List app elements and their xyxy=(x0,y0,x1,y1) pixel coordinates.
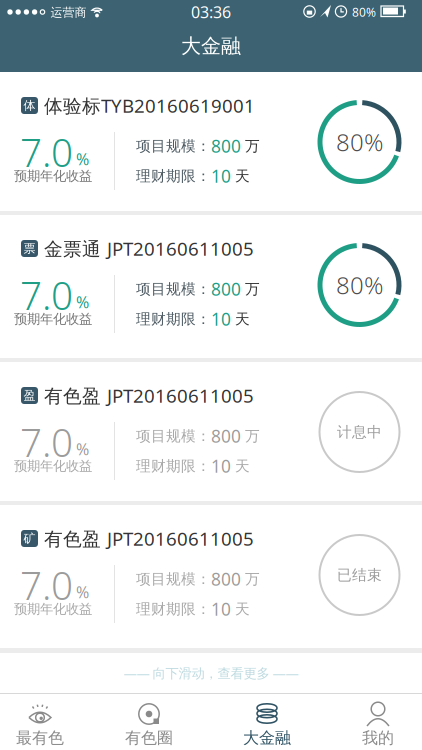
staticText: 大金融 xyxy=(181,34,241,58)
button[interactable]: 矿 xyxy=(0,505,422,648)
button[interactable]: 最有色 xyxy=(0,698,81,748)
staticText: 理财期限： xyxy=(136,600,211,618)
staticText: 预期年化收益 xyxy=(14,601,92,617)
staticText: 有色盈 JPT20160611005 xyxy=(44,526,254,551)
staticText: % xyxy=(76,291,89,313)
staticText: 计息中 xyxy=(337,423,382,441)
staticText: 7.0 xyxy=(20,416,73,468)
staticText: 项目规模： xyxy=(136,137,211,155)
staticText: 80% xyxy=(352,4,376,20)
staticText: 10 xyxy=(211,454,231,477)
staticText: 已结束 xyxy=(337,566,382,584)
button[interactable]: 有色圈 xyxy=(104,698,194,748)
button[interactable]: 体 xyxy=(0,72,422,211)
button[interactable]: 盈 xyxy=(0,362,422,501)
staticText: 800 xyxy=(211,424,241,447)
staticText: 预期年化收益 xyxy=(14,458,92,474)
staticText: —— 向下滑动，查看更多 —— xyxy=(123,664,298,682)
staticText: 03:36 xyxy=(191,1,231,23)
staticText: % xyxy=(76,148,89,170)
staticText: 天 xyxy=(231,600,250,618)
staticText: 万 xyxy=(241,570,260,588)
staticText: 万 xyxy=(241,427,260,445)
staticText: 大金融 xyxy=(243,728,291,748)
staticText: 项目规模： xyxy=(136,570,211,588)
staticText: 7.0 xyxy=(20,559,73,611)
staticText: 矿 xyxy=(23,531,35,546)
staticText: 理财期限： xyxy=(136,457,211,475)
staticText: 7.0 xyxy=(20,269,73,321)
staticText: 体验标TYB20160619001 xyxy=(44,93,255,118)
staticText: 天 xyxy=(231,310,250,328)
staticText: 天 xyxy=(231,167,250,185)
staticText: 80% xyxy=(336,126,383,158)
staticText: 最有色 xyxy=(16,728,64,748)
staticText: 10 xyxy=(211,164,231,187)
staticText: 项目规模： xyxy=(136,427,211,445)
staticText: 我的 xyxy=(362,728,394,748)
button[interactable]: 票 xyxy=(0,215,422,358)
staticText: 800 xyxy=(211,277,241,300)
staticText: 票 xyxy=(23,241,35,256)
staticText: 有色圈 xyxy=(125,728,173,748)
staticText: 金票通 JPT20160611005 xyxy=(44,236,254,261)
staticText: 预期年化收益 xyxy=(14,311,92,327)
staticText: 理财期限： xyxy=(136,310,211,328)
staticText: 万 xyxy=(241,280,260,298)
staticText: 有色盈 JPT20160611005 xyxy=(44,383,254,408)
staticText: % xyxy=(76,581,89,603)
button[interactable]: 我的 xyxy=(333,698,422,748)
staticText: 800 xyxy=(211,567,241,590)
staticText: 盈 xyxy=(23,388,35,403)
staticText: 7.0 xyxy=(20,126,73,178)
staticText: 预期年化收益 xyxy=(14,168,92,184)
staticText: 理财期限： xyxy=(136,167,211,185)
staticText: % xyxy=(76,438,89,460)
staticText: 10 xyxy=(211,597,231,620)
staticText: 项目规模： xyxy=(136,280,211,298)
staticText: 运营商 xyxy=(50,5,86,20)
staticText: 10 xyxy=(211,307,231,330)
staticText: 800 xyxy=(211,134,241,157)
button[interactable]: 大金融 xyxy=(222,698,312,748)
staticText: 万 xyxy=(241,137,260,155)
staticText: 天 xyxy=(231,457,250,475)
staticText: 体 xyxy=(23,98,35,113)
staticText: 80% xyxy=(336,269,383,301)
